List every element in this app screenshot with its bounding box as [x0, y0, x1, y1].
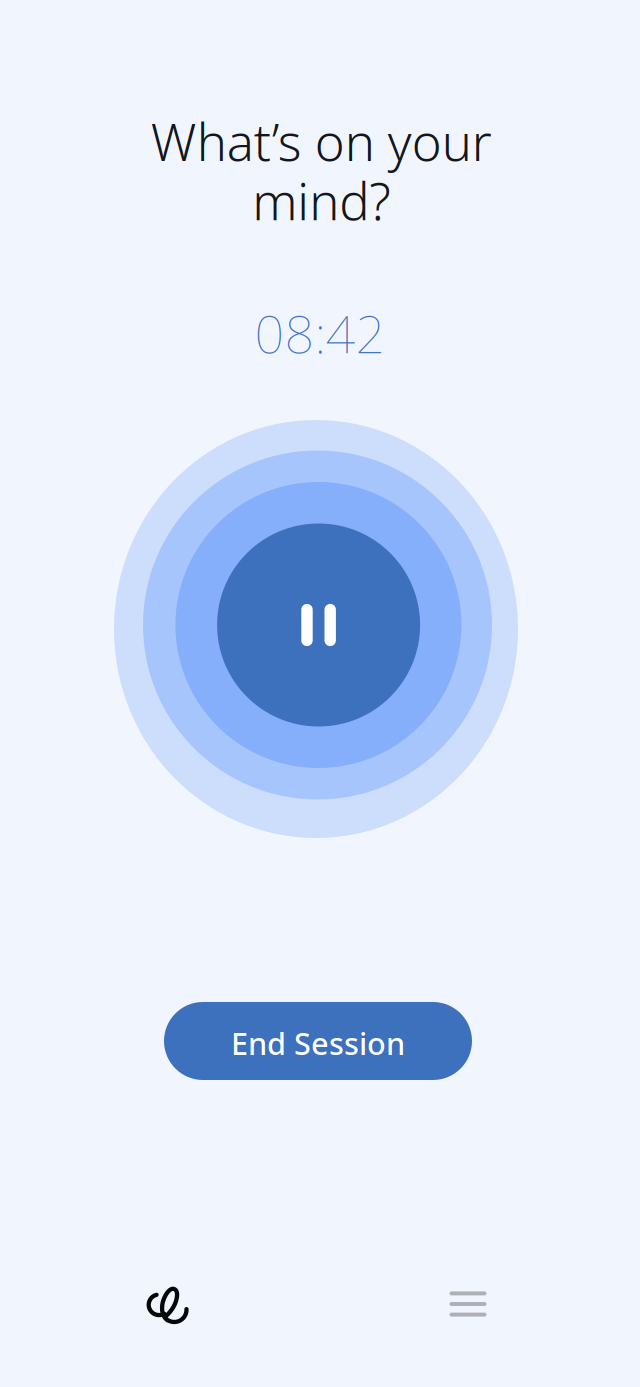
button[interactable]: Pause	[114, 423, 518, 827]
staticText: 08:42	[254, 298, 385, 368]
button[interactable]: Menu	[440, 1276, 496, 1332]
staticText: End Session	[231, 1023, 405, 1063]
button[interactable]: Home	[136, 1274, 202, 1338]
button[interactable]: End Session	[164, 1002, 472, 1080]
staticText: What’s on your mind?	[150, 108, 491, 234]
